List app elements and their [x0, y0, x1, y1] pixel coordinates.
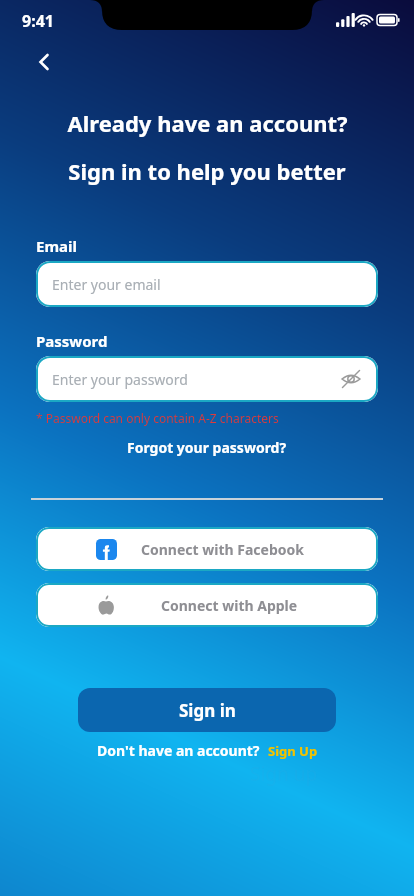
staticText: Email — [36, 236, 77, 256]
staticText: * Password can only contain A-Z characte… — [36, 410, 279, 426]
staticText: Sign Up — [268, 742, 318, 760]
staticText: 9:41 — [22, 10, 54, 32]
staticText: Don't have an account? — [97, 741, 260, 760]
staticText: Connect with Apple — [161, 596, 298, 615]
button[interactable]: Enter your password — [36, 356, 378, 402]
button[interactable]: Sign Up — [268, 742, 318, 760]
staticText: Already have an account? — [67, 108, 348, 138]
staticText: Enter your password — [52, 370, 188, 389]
staticText: Password — [36, 331, 108, 351]
button[interactable]: Back — [24, 42, 64, 82]
staticText: Sign in to help you better — [68, 156, 346, 186]
staticText: Connect with Facebook — [141, 540, 304, 559]
button[interactable]: Enter your email — [36, 261, 378, 307]
button[interactable]: Show password — [338, 366, 364, 392]
staticText: Enter your email — [52, 275, 161, 294]
button[interactable]: Forgot your password? — [0, 438, 414, 457]
button[interactable]: Sign in — [78, 688, 336, 732]
button[interactable]: Connect with Facebook — [36, 527, 378, 571]
staticText: Forgot your password? — [127, 438, 287, 457]
button[interactable]: Connect with Apple — [36, 583, 378, 627]
staticText: Sign in — [179, 699, 236, 722]
